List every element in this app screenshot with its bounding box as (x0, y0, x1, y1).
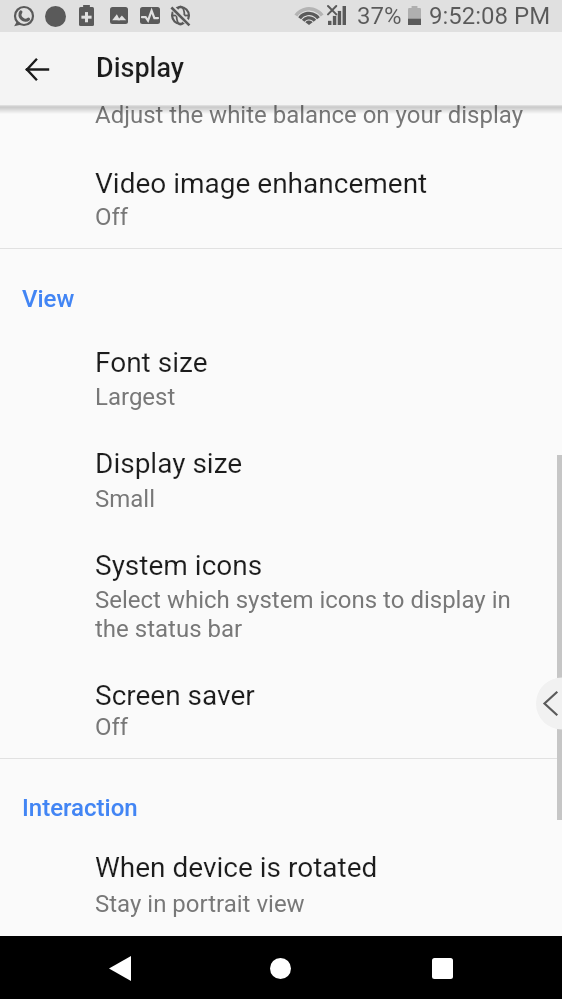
staticText: 9:52:08 PM (429, 2, 551, 30)
staticText: Select which system icons to display in … (95, 586, 515, 643)
staticText: View (22, 285, 75, 313)
staticText: Largest (95, 383, 176, 411)
button[interactable]: System icons (0, 520, 562, 652)
button[interactable]: Video image enhancement (0, 148, 562, 248)
button[interactable]: Adjust the white balance on your display (0, 92, 562, 148)
button[interactable]: Home (250, 938, 310, 998)
button[interactable]: Recent apps (412, 938, 472, 998)
button[interactable]: When device is rotated (0, 826, 562, 926)
staticText: Interaction (22, 794, 138, 822)
staticText: Stay in portrait view (95, 890, 305, 918)
staticText: Display (96, 52, 185, 84)
staticText: Adjust the white balance on your display (95, 101, 524, 129)
button[interactable]: Edge panel handle (532, 677, 562, 730)
button[interactable]: Navigate up (10, 42, 64, 96)
staticText: System icons (95, 549, 263, 582)
staticText: Off (95, 203, 129, 231)
button[interactable]: Display size (0, 420, 562, 520)
button[interactable]: Font size (0, 320, 562, 420)
button[interactable]: Screen saver (0, 652, 562, 752)
staticText: Video image enhancement (95, 167, 428, 200)
button[interactable]: Back (90, 938, 150, 998)
staticText: When device is rotated (95, 851, 378, 884)
staticText: Font size (95, 346, 208, 379)
staticText: Off (95, 713, 129, 741)
staticText: Display size (95, 447, 243, 480)
staticText: 37% (357, 2, 402, 30)
staticText: Small (95, 485, 156, 513)
staticText: Screen saver (95, 679, 255, 712)
